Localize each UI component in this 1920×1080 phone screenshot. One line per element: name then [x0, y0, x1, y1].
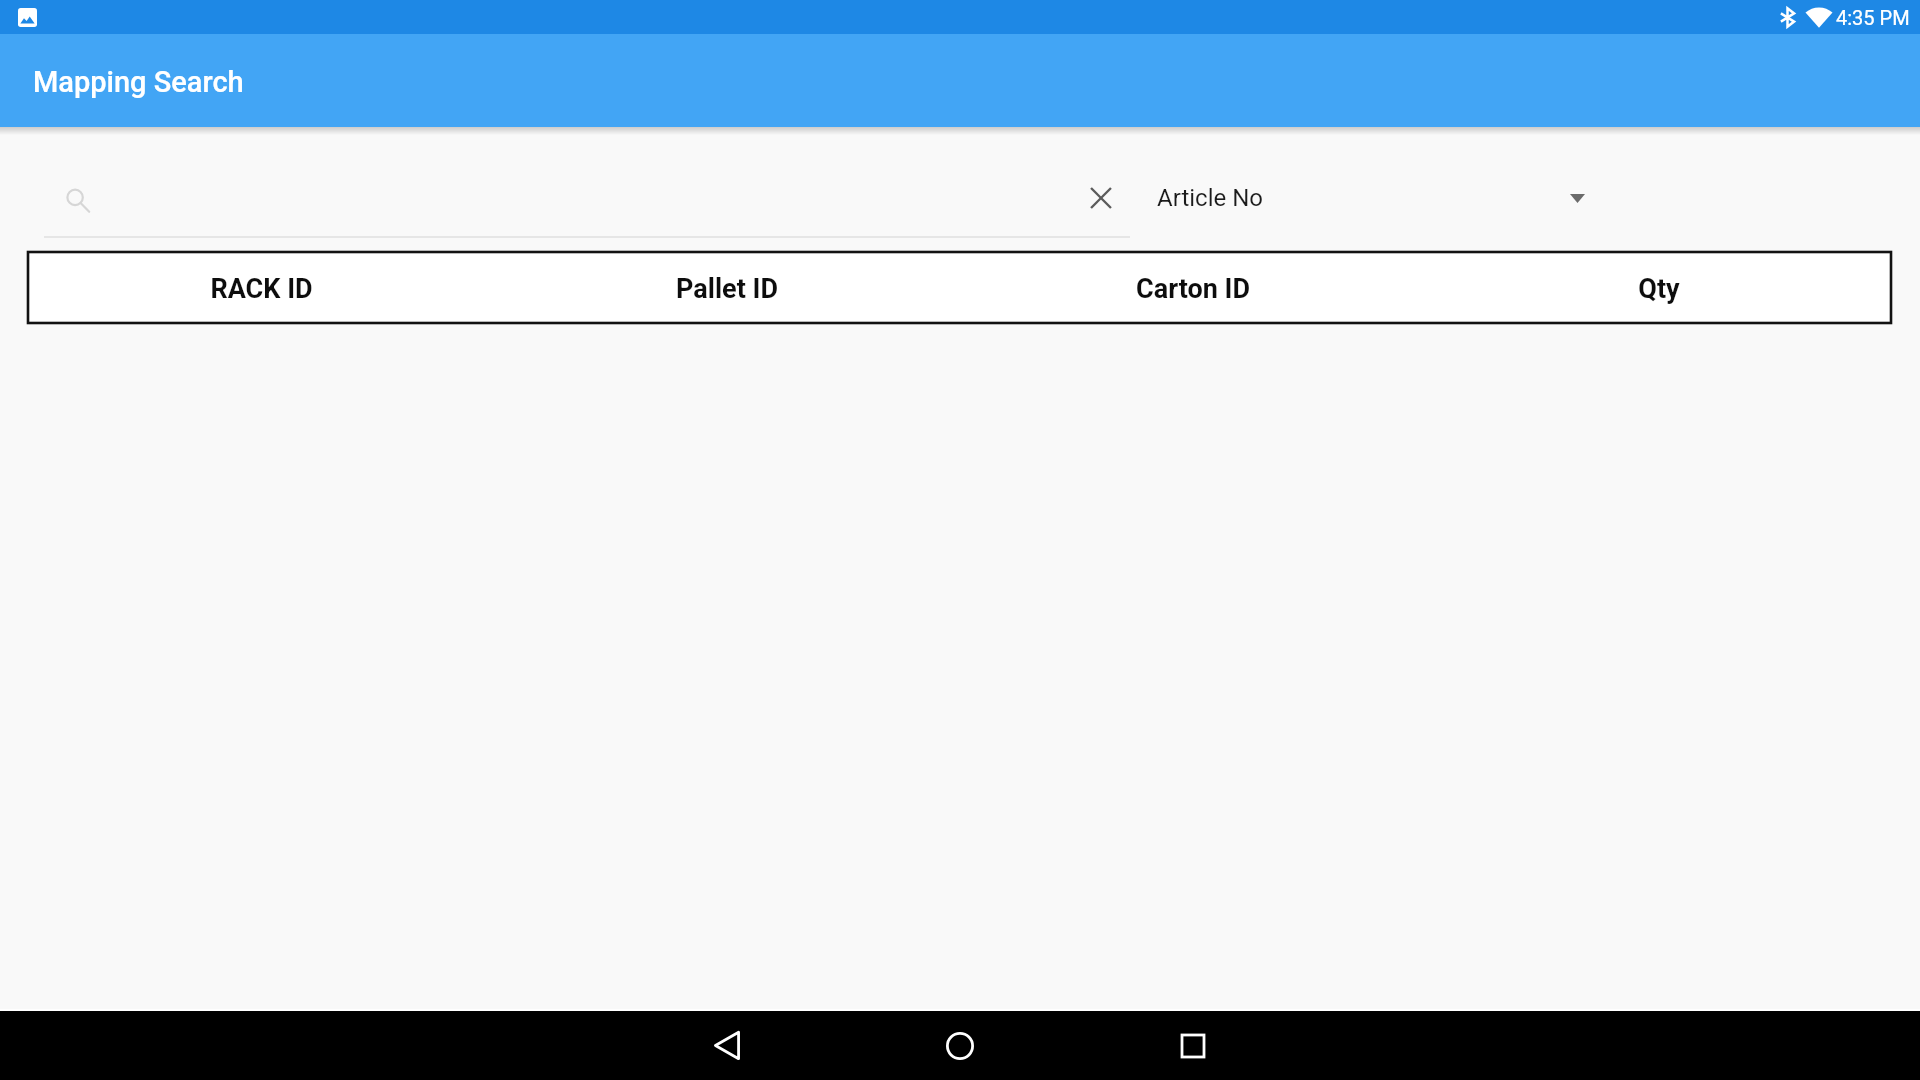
- other: Screenshot: [18, 8, 37, 27]
- button[interactable]: Clear search: [1077, 174, 1125, 222]
- staticText: Carton ID: [1136, 273, 1250, 305]
- button[interactable]: Carton ID: [959, 252, 1425, 323]
- button[interactable]: Back: [685, 1011, 769, 1080]
- staticText: Mapping Search: [33, 65, 244, 99]
- staticText: 4:35 PM: [1836, 6, 1910, 29]
- button[interactable]: Home: [918, 1011, 1002, 1080]
- staticText: Pallet ID: [676, 273, 778, 305]
- button[interactable]: Search field: [44, 160, 1130, 238]
- button[interactable]: Qty: [1425, 252, 1891, 323]
- staticText: RACK ID: [210, 273, 313, 305]
- button[interactable]: Recent apps: [1151, 1011, 1235, 1080]
- button[interactable]: Article No: [1157, 170, 1585, 226]
- staticText: Article No: [1157, 184, 1263, 212]
- staticText: Qty: [1638, 273, 1680, 305]
- button[interactable]: RACK ID: [28, 252, 493, 323]
- button[interactable]: Pallet ID: [493, 252, 959, 323]
